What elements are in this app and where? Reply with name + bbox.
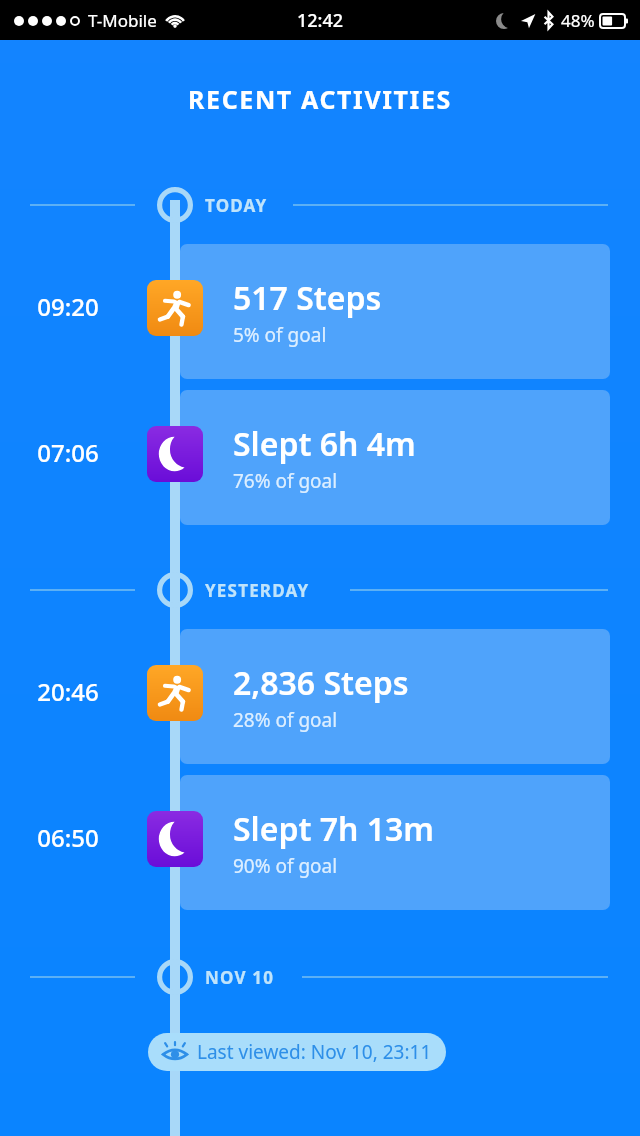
staticText: 76% of goal bbox=[233, 468, 338, 494]
staticText: 5% of goal bbox=[233, 322, 327, 348]
staticText: Last viewed: Nov 10, 23:11 bbox=[197, 1039, 432, 1065]
staticText: 06:50 bbox=[6, 821, 130, 854]
staticText: 2,836 Steps bbox=[233, 661, 409, 705]
staticText: 90% of goal bbox=[233, 853, 338, 879]
staticText: 28% of goal bbox=[233, 707, 338, 733]
staticText: TODAY bbox=[205, 194, 268, 217]
button[interactable]: Last viewed: Nov 10, 23:11 bbox=[162, 1033, 432, 1071]
button[interactable]: 517 Steps bbox=[180, 244, 610, 379]
staticText: 48% bbox=[561, 9, 595, 32]
button[interactable]: Slept 7h 13m bbox=[180, 775, 610, 910]
button[interactable]: Slept 6h 4m bbox=[180, 390, 610, 525]
button[interactable]: 2,836 Steps bbox=[180, 629, 610, 764]
button[interactable]: Sleep bbox=[147, 811, 203, 867]
staticText: 12:42 bbox=[297, 8, 344, 33]
staticText: 517 Steps bbox=[233, 276, 382, 320]
button[interactable]: Steps bbox=[147, 665, 203, 721]
staticText: NOV 10 bbox=[205, 966, 275, 989]
staticText: RECENT ACTIVITIES bbox=[0, 82, 640, 116]
button[interactable]: Sleep bbox=[147, 426, 203, 482]
staticText: 09:20 bbox=[6, 290, 130, 323]
staticText: YESTERDAY bbox=[205, 579, 310, 602]
staticText: Slept 7h 13m bbox=[233, 807, 435, 851]
staticText: 20:46 bbox=[6, 675, 130, 708]
staticText: 07:06 bbox=[6, 436, 130, 469]
staticText: T-Mobile bbox=[88, 9, 157, 32]
staticText: Slept 6h 4m bbox=[233, 422, 416, 466]
button[interactable]: Steps bbox=[147, 280, 203, 336]
